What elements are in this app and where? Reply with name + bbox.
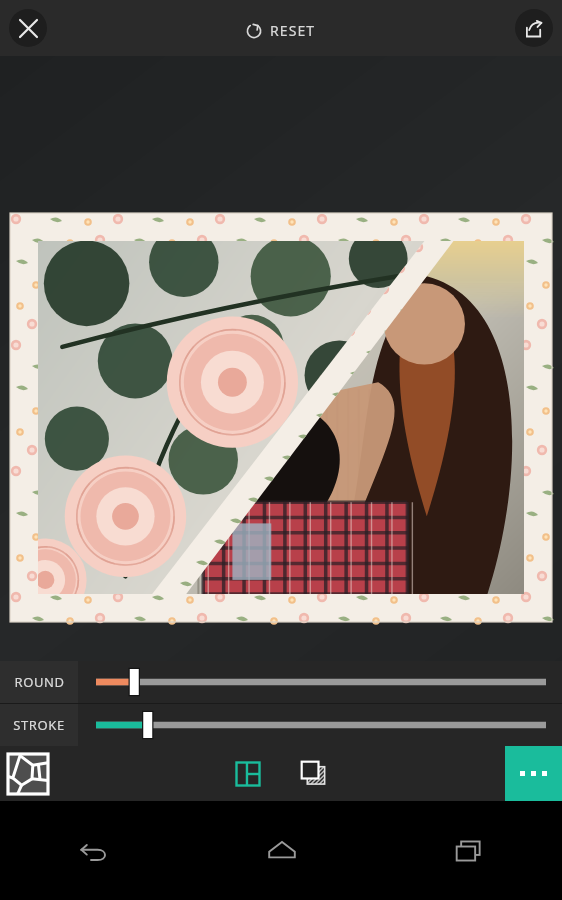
button[interactable]: Close <box>9 9 47 47</box>
staticText: RESET <box>270 21 316 40</box>
button[interactable]: More options <box>505 746 562 801</box>
button[interactable]: STROKE <box>0 704 562 746</box>
staticText: STROKE <box>13 716 65 734</box>
button[interactable]: Back <box>0 801 188 900</box>
button[interactable]: Background <box>291 751 337 797</box>
button[interactable]: ROUND <box>0 661 562 703</box>
button[interactable]: Share <box>515 9 553 47</box>
button[interactable]: Home <box>188 801 375 900</box>
button[interactable]: RESET <box>236 15 326 46</box>
button[interactable] <box>0 56 562 801</box>
button[interactable]: Layout <box>5 751 51 797</box>
button[interactable]: Grid layout <box>225 751 271 797</box>
staticText: ROUND <box>14 673 65 691</box>
button[interactable]: Recent apps <box>375 801 562 900</box>
